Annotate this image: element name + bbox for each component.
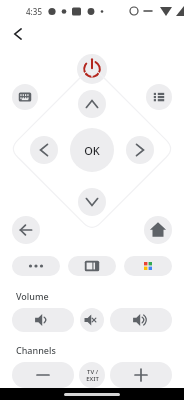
button[interactable]: Right	[126, 136, 154, 164]
button[interactable]: Home	[144, 216, 172, 244]
button[interactable]: Down	[78, 188, 106, 216]
staticText: Volume	[16, 290, 49, 302]
button[interactable]: Channel up	[110, 362, 172, 388]
button[interactable]: Keyboard	[12, 84, 38, 110]
button[interactable]: Channel down	[12, 362, 74, 388]
staticText: 4:35	[26, 6, 42, 17]
button[interactable]: Mute	[80, 308, 104, 332]
button[interactable]: TV / EXIT	[79, 362, 105, 388]
staticText: Channels	[16, 344, 56, 356]
button[interactable]: Left	[30, 136, 58, 164]
button[interactable]: Input	[68, 256, 116, 276]
button[interactable]: Power	[77, 54, 107, 84]
button[interactable]: Back	[6, 22, 30, 46]
button[interactable]: Guide	[146, 84, 172, 110]
button[interactable]: Volume down	[12, 308, 74, 332]
button[interactable]: Back	[12, 216, 40, 244]
button[interactable]: OK	[70, 128, 114, 172]
button[interactable]: Apps	[124, 256, 172, 276]
button[interactable]: More options	[12, 256, 60, 276]
button[interactable]: Volume up	[110, 308, 172, 332]
staticText: OK	[84, 143, 100, 158]
staticText: TV / EXIT	[86, 368, 99, 383]
button[interactable]: Up	[78, 90, 106, 118]
